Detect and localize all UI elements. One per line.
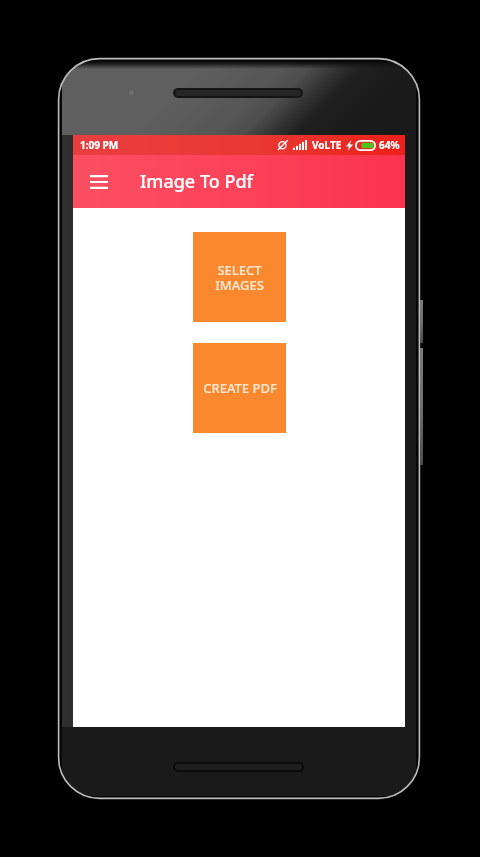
staticText: 1:09 PM xyxy=(80,138,119,152)
button[interactable]: SELECT IMAGES xyxy=(193,232,286,322)
button[interactable]: CREATE PDF xyxy=(193,343,286,433)
staticText: 64% xyxy=(379,138,400,152)
staticText: VoLTE xyxy=(312,138,342,152)
staticText: CREATE PDF xyxy=(203,379,277,397)
staticText: Image To Pdf xyxy=(140,169,253,194)
button[interactable]: Open navigation menu xyxy=(80,163,118,201)
staticText: SELECT IMAGES xyxy=(215,261,264,294)
